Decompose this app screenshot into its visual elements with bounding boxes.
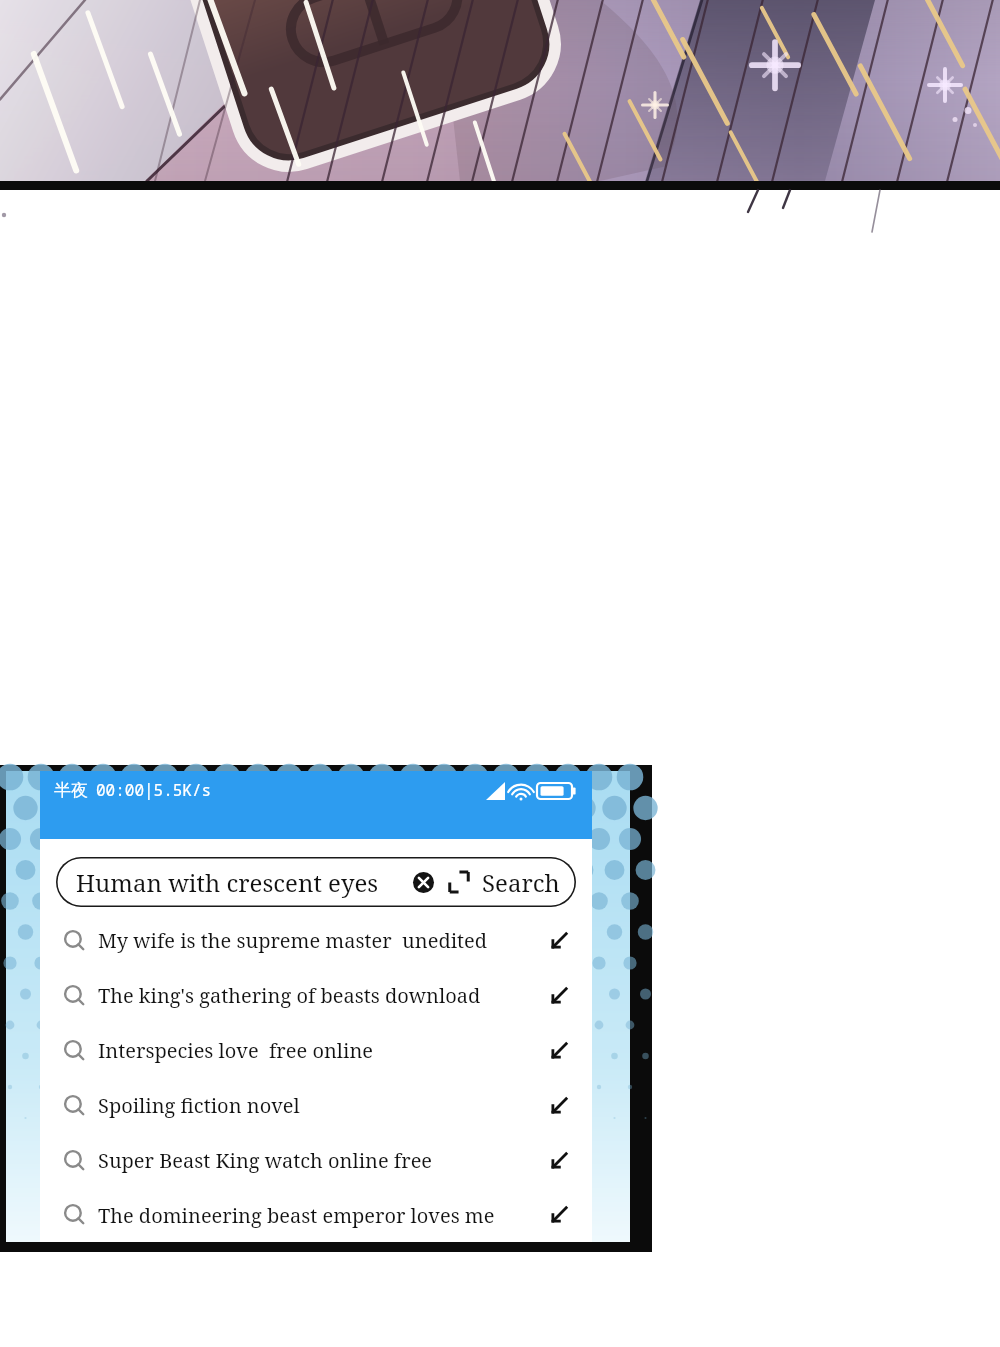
button[interactable]: The king's gathering of beasts download xyxy=(40,968,592,1023)
staticText: Interspecies love free online xyxy=(98,1037,546,1064)
staticText: 00:00|5.5K/s xyxy=(96,779,212,801)
button[interactable]: The domineering beast emperor loves me xyxy=(40,1188,592,1242)
staticText: Super Beast King watch online free xyxy=(98,1147,546,1174)
button[interactable]: Scan xyxy=(446,869,472,895)
button[interactable]: Super Beast King watch online free xyxy=(40,1133,592,1188)
button[interactable]: Insert suggestion xyxy=(546,1038,572,1064)
button[interactable]: Insert suggestion xyxy=(546,928,572,954)
staticText: 半夜 xyxy=(54,780,88,801)
button[interactable]: Spoiling fiction novel xyxy=(40,1078,592,1133)
staticText: My wife is the supreme master unedited v… xyxy=(98,927,546,954)
staticText: The domineering beast emperor loves me xyxy=(98,1202,546,1229)
button[interactable]: Insert suggestion xyxy=(546,1148,572,1174)
button[interactable]: Human with crescent eyes xyxy=(56,857,576,907)
button[interactable]: Interspecies love free online xyxy=(40,1023,592,1078)
staticText: Human with crescent eyes xyxy=(76,866,410,899)
staticText: Search xyxy=(482,866,560,899)
button[interactable]: My wife is the supreme master unedited v… xyxy=(40,913,592,968)
button[interactable]: Insert suggestion xyxy=(546,1202,572,1228)
button[interactable]: Clear search xyxy=(410,869,436,895)
staticText: The king's gathering of beasts download xyxy=(98,982,546,1009)
staticText: Spoiling fiction novel xyxy=(98,1092,546,1119)
button[interactable]: Insert suggestion xyxy=(546,1093,572,1119)
button[interactable]: Insert suggestion xyxy=(546,983,572,1009)
